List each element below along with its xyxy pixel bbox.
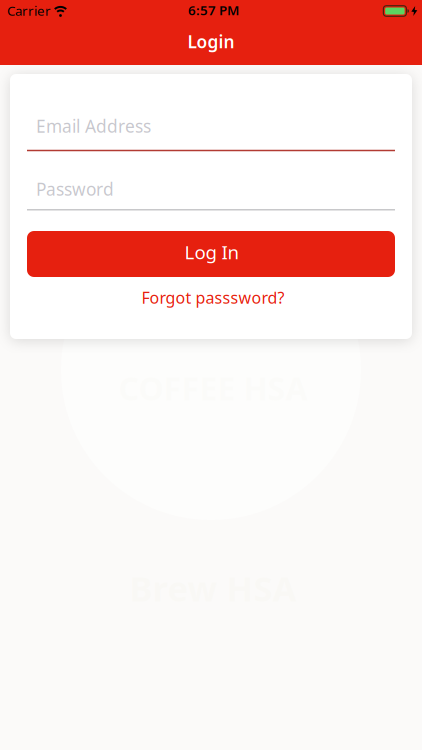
button[interactable]: Email Address [27,111,395,151]
staticText: Login [187,30,234,53]
staticText: Password [36,177,114,200]
staticText: Forgot passsword? [141,287,284,308]
button[interactable]: Forgot passsword? [27,277,395,321]
staticText: Log In [184,240,239,264]
button[interactable]: Log In [27,231,395,277]
staticText: Email Address [36,114,151,137]
staticText: Carrier [7,2,51,19]
button[interactable]: Password [27,174,395,210]
staticText: 6:57 PM [188,1,239,19]
